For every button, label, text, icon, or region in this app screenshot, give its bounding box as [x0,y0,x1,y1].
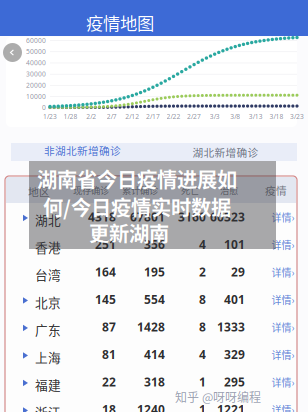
staticText: 145 [95,291,116,307]
staticText: 3/18 [269,112,283,121]
staticText: 50000 [26,47,46,56]
staticText: 2/17 [146,112,160,121]
staticText: 香港 [35,238,61,256]
staticText: 详情› [271,265,294,279]
staticText: 详情› [271,210,294,224]
button[interactable]: 台湾 [7,258,297,285]
staticText: 1221 [217,401,245,412]
staticText: 2/2 [86,112,96,121]
staticText: 8 [199,319,206,335]
staticText: 湖南省今日疫情进展如 [37,164,237,193]
staticText: 北京 [35,293,61,311]
staticText: 60000 [26,36,46,45]
button[interactable]: 湖北 [7,203,297,230]
staticText: 知乎 @呀呀编程 [175,388,261,405]
staticText: 湖北新增确诊 [192,144,258,160]
staticText: 8 [199,291,206,307]
staticText: 18 [102,401,116,412]
staticText: 上海 [35,348,61,366]
staticText: 1428 [137,319,165,335]
staticText: 3/8 [230,112,240,121]
staticText: 详情› [271,292,294,307]
staticText: 2/27 [187,112,201,121]
staticText: 非湖北新增确诊 [44,143,121,158]
staticText: 死亡 [181,183,199,197]
staticText: 1240 [137,401,165,412]
button[interactable]: 广东 [7,313,297,340]
staticText: 疫情 [265,182,287,198]
button[interactable]: Back [3,43,22,62]
staticText: 4 [199,236,206,252]
staticText: 2 [199,264,206,280]
button[interactable]: 香港 [7,230,297,258]
staticText: 101 [224,236,245,252]
staticText: 2/22 [166,112,180,121]
staticText: 29 [231,264,245,280]
staticText: 10000 [26,92,46,101]
staticText: 318 [144,374,165,390]
staticText: 浙江 [35,403,61,412]
staticText: 329 [224,346,245,362]
staticText: 福建 [35,375,61,393]
staticText: 295 [224,374,245,390]
staticText: 554 [144,291,165,307]
staticText: 湖北 [35,210,61,228]
staticText: 疫情地图 [86,10,154,35]
staticText: 4318 [88,209,116,225]
staticText: 治愈 [220,183,238,197]
staticText: 4 [199,346,206,362]
staticText: 22 [102,374,116,390]
button[interactable]: 福建 [7,368,297,395]
staticText: 地区 [28,184,50,199]
button[interactable]: 非湖北新增确诊 [11,143,154,161]
staticText: 详情› [271,320,294,334]
staticText: 1/28 [64,112,78,121]
staticText: 401 [224,291,245,307]
staticText: 3/3 [210,112,220,121]
staticText: 2/12 [125,112,139,121]
staticText: 414 [144,346,165,362]
staticText: 20000 [26,81,46,90]
staticText: 67801 [130,209,165,225]
staticText: 81 [102,346,116,362]
staticText: 详情› [271,237,294,252]
staticText: 台湾 [35,265,61,283]
staticText: 251 [95,236,116,252]
staticText: 现存确诊 [73,183,109,197]
button[interactable]: 北京 [7,285,297,313]
staticText: 60323 [210,209,245,225]
staticText: 何/今日疫情实时数据 [43,192,231,221]
staticText: 0 [42,103,46,112]
staticText: 广东 [35,320,61,338]
staticText: 详情› [271,347,294,362]
staticText: 1 [199,401,206,412]
staticText: 164 [95,264,116,280]
staticText: 3/23 [290,112,304,121]
staticText: 1/23 [43,112,57,121]
button[interactable]: 湖北新增确诊 [154,143,297,161]
staticText: 1333 [217,319,245,335]
staticText: 1 [199,374,206,390]
staticText: 195 [144,264,165,280]
button[interactable]: 上海 [7,340,297,368]
staticText: 详情› [271,375,294,389]
staticText: 3/13 [249,112,263,121]
staticText: 更新湖南 [89,218,169,247]
staticText: 356 [144,236,165,252]
staticText: 87 [102,319,116,335]
staticText: 30000 [26,69,46,78]
staticText: 详情› [271,402,294,412]
staticText: 40000 [26,58,46,67]
staticText: 3160 [178,209,206,225]
staticText: 2/7 [107,112,117,121]
button[interactable]: 浙江 [7,395,297,412]
staticText: 累计确诊 [122,183,158,197]
